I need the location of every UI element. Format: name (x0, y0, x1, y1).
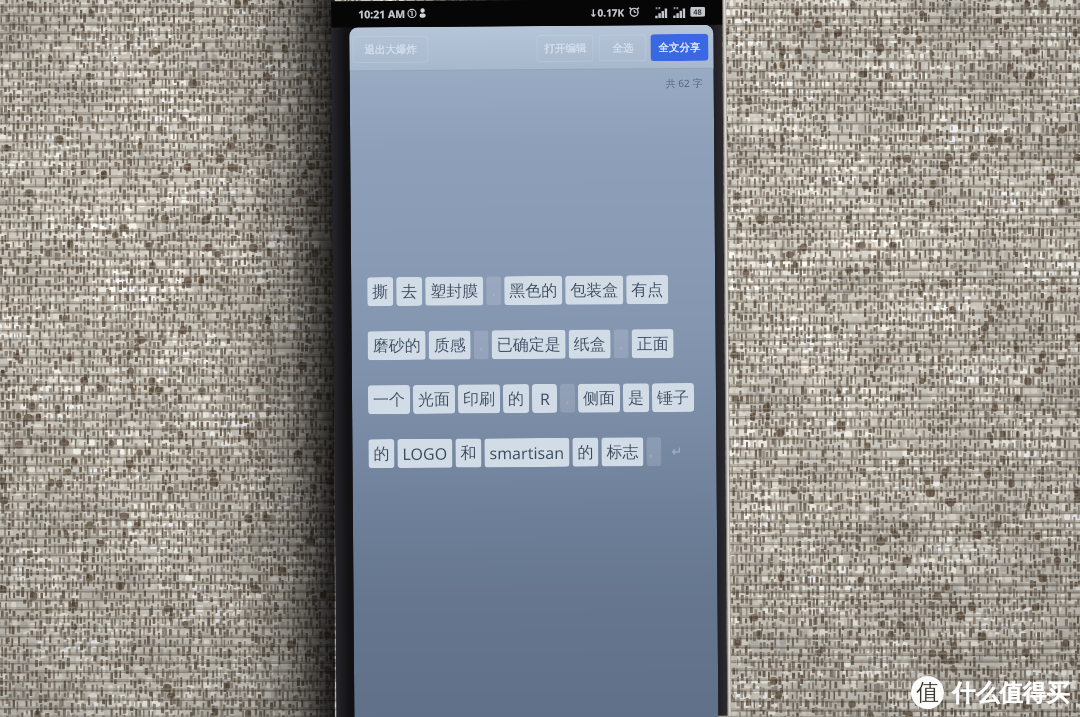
button[interactable]: 的 (503, 384, 529, 413)
staticText: 塑封膜 (430, 281, 478, 302)
button[interactable]: 印刷 (458, 384, 500, 414)
staticText: 什么值得买 (952, 678, 1070, 708)
button[interactable]: ， (613, 329, 629, 358)
button[interactable]: 磨砂的 (367, 331, 426, 360)
staticText: LOGO (402, 443, 448, 465)
staticText: 标志 (606, 442, 638, 462)
button[interactable]: 标志 (601, 437, 643, 466)
button[interactable]: 去 (396, 277, 422, 306)
staticText: 是 (628, 388, 644, 408)
staticText: 打开编辑 (544, 42, 586, 55)
staticText: R (540, 388, 550, 410)
staticText: 正面 (637, 334, 669, 354)
staticText: 全选 (612, 41, 633, 54)
button[interactable]: R (532, 384, 557, 413)
staticText: 48 (693, 7, 702, 17)
staticText: 侧面 (583, 388, 615, 409)
staticText: 纸盒 (574, 334, 606, 355)
button[interactable]: 已确定是 (491, 330, 566, 359)
staticText: 共 62 字 (666, 76, 703, 90)
button[interactable]: 包装盒 (565, 275, 623, 305)
button[interactable]: ， (473, 330, 489, 359)
button[interactable]: 打开编辑 (536, 35, 594, 62)
button[interactable]: 和 (455, 438, 481, 468)
staticText: 光面 (418, 390, 450, 410)
button[interactable]: 的 (368, 439, 394, 468)
staticText: 一个 (373, 390, 405, 410)
staticText: 全文分享 (658, 41, 700, 54)
staticText: 值 (916, 678, 939, 707)
staticText: 的 (373, 444, 389, 464)
staticText: 已确定是 (497, 335, 561, 355)
button[interactable]: 撕 (367, 277, 393, 306)
button[interactable]: 纸盒 (568, 329, 611, 359)
staticText: smartisan (489, 442, 565, 464)
staticText: 有点 (631, 280, 663, 300)
staticText: 和 (460, 443, 476, 464)
button[interactable]: 黑色的 (504, 276, 562, 305)
staticText: 的 (577, 443, 593, 463)
button[interactable]: 有点 (626, 275, 668, 304)
staticText: ↵ (671, 444, 682, 459)
button[interactable]: 全选 (598, 34, 647, 62)
button[interactable]: 侧面 (578, 383, 620, 413)
button[interactable]: 的 (572, 438, 598, 467)
staticText: ↓0.17K (589, 5, 624, 20)
staticText: 退出大爆炸 (364, 43, 417, 56)
button[interactable]: 退出大爆炸 (352, 36, 429, 63)
button[interactable]: ， (560, 384, 575, 413)
button[interactable]: LOGO (397, 439, 452, 468)
staticText: 黑色的 (509, 281, 557, 301)
button[interactable]: 塑封膜 (425, 276, 483, 306)
button[interactable]: 正面 (631, 329, 674, 358)
staticText: 去 (401, 282, 417, 302)
staticText: 质感 (434, 335, 466, 356)
button[interactable]: 锤子 (652, 383, 694, 412)
staticText: 磨砂的 (373, 336, 421, 356)
button[interactable]: 质感 (428, 330, 471, 360)
button[interactable]: 。 (646, 437, 661, 466)
staticText: 撕 (372, 282, 388, 302)
button[interactable]: 全文分享 (650, 34, 709, 61)
button[interactable]: ， (486, 276, 501, 305)
staticText: 包装盒 (570, 280, 618, 301)
button[interactable]: 是 (623, 383, 649, 412)
staticText: 的 (508, 389, 524, 409)
staticText: 10:21 AM (358, 7, 405, 21)
button[interactable]: 光面 (413, 385, 455, 414)
button[interactable]: 一个 (368, 385, 410, 414)
button[interactable]: smartisan (484, 438, 569, 467)
staticText: 锤子 (657, 388, 689, 408)
staticText: 印刷 (463, 389, 495, 409)
